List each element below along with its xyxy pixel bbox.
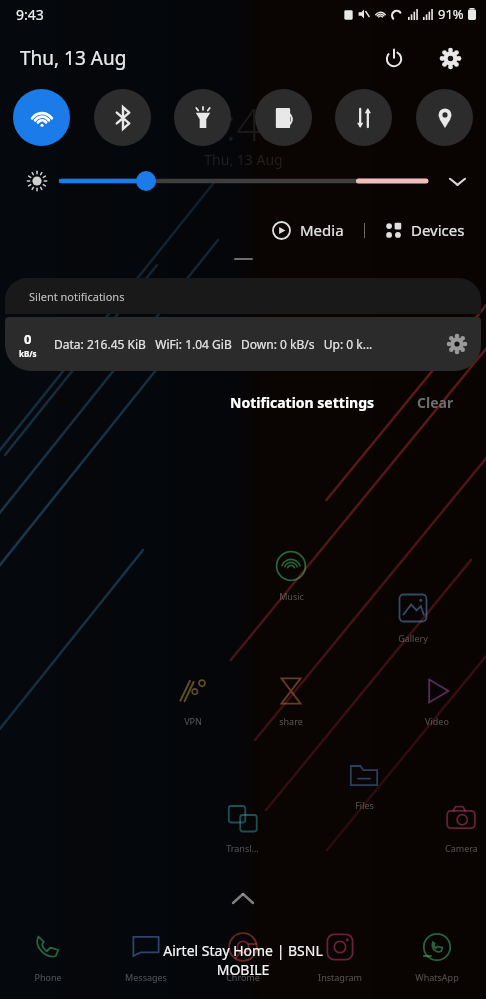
- button[interactable]: 0: [5, 317, 481, 371]
- staticText: VPN: [184, 715, 202, 727]
- staticText: share: [279, 715, 303, 727]
- button[interactable]: Expand: [440, 164, 474, 198]
- staticText: Devices: [411, 220, 465, 240]
- staticText: Chrome: [226, 971, 260, 983]
- button[interactable]: Location: [416, 89, 473, 146]
- staticText: Thu, 13 Aug: [20, 45, 127, 71]
- button[interactable]: Notification settings: [441, 328, 473, 360]
- staticText: Video: [425, 715, 449, 727]
- staticText: Transl...: [226, 842, 259, 854]
- staticText: Music: [279, 590, 304, 602]
- staticText: Phone: [34, 971, 62, 983]
- staticText: Clear: [417, 393, 454, 412]
- staticText: Media: [300, 220, 344, 240]
- button[interactable]: Power: [376, 40, 412, 76]
- staticText: Data: 216.45 KiB WiFi: 1.04 GiB Down: 0 …: [54, 336, 373, 352]
- button[interactable]: NFC: [255, 89, 312, 146]
- staticText: Notification settings: [230, 393, 375, 412]
- button[interactable]: Brightness: [61, 168, 426, 194]
- staticText: Messages: [125, 971, 167, 983]
- button[interactable]: Devices: [379, 216, 471, 244]
- button[interactable]: Mobile data: [335, 89, 392, 146]
- staticText: Silent notifications: [29, 289, 125, 304]
- staticText: 9:43: [16, 5, 44, 24]
- staticText: WhatsApp: [415, 971, 459, 983]
- button[interactable]: Clear: [409, 389, 462, 416]
- button[interactable]: Bluetooth: [94, 89, 151, 146]
- button[interactable]: Flashlight: [174, 89, 231, 146]
- button[interactable]: Settings: [432, 40, 468, 76]
- staticText: 0: [24, 330, 32, 348]
- staticText: Files: [355, 799, 374, 811]
- button[interactable]: Notification settings: [222, 389, 383, 416]
- staticText: Thu, 13 Aug: [204, 150, 283, 169]
- staticText: Instagram: [318, 971, 362, 983]
- staticText: 9:43: [200, 94, 287, 154]
- button[interactable]: Wi-Fi: [13, 89, 70, 146]
- staticText: kB/s: [19, 348, 37, 359]
- staticText: Airtel Stay Home | BSNL MOBILE: [143, 941, 343, 979]
- staticText: Camera: [445, 842, 478, 854]
- button[interactable]: Silent notifications: [5, 278, 481, 314]
- staticText: Gallery: [398, 632, 428, 644]
- staticText: 91%: [438, 5, 464, 23]
- button[interactable]: Media: [266, 216, 350, 244]
